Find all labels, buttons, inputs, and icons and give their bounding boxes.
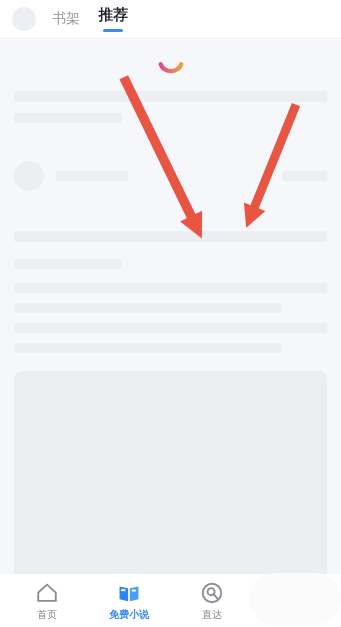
staticText: 直达 bbox=[202, 608, 222, 621]
button[interactable]: 书架 bbox=[50, 6, 82, 32]
button[interactable]: 免费小说 bbox=[94, 574, 164, 627]
staticText: 免费小说 bbox=[109, 608, 149, 621]
staticText: 书架 bbox=[52, 10, 80, 28]
staticText: 推荐 bbox=[98, 6, 128, 25]
button[interactable]: 首页 bbox=[12, 574, 82, 627]
staticText: 首页 bbox=[37, 608, 57, 621]
button[interactable]: Profile bbox=[12, 7, 36, 31]
button[interactable]: 推荐 bbox=[98, 6, 128, 32]
button[interactable]: 直达 bbox=[177, 574, 247, 627]
